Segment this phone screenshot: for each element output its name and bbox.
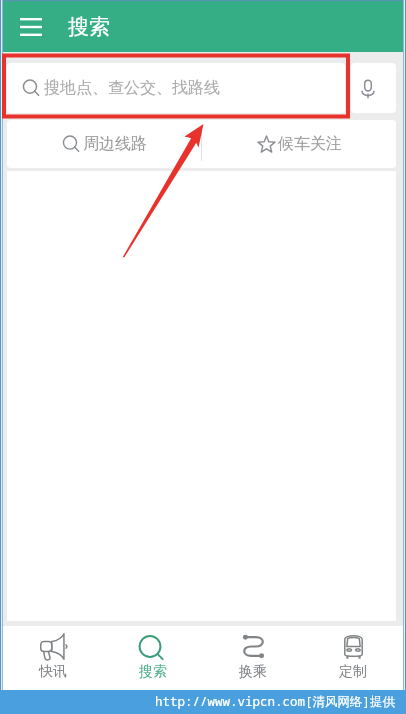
staticText: 快讯 — [39, 663, 67, 681]
button[interactable]: 快讯 — [3, 626, 103, 691]
staticText: 搜索 — [68, 14, 110, 40]
staticText: 候车关注 — [278, 134, 342, 154]
staticText: 周边线路 — [83, 134, 147, 154]
button[interactable]: 候车关注 — [202, 120, 396, 168]
staticText: 定制 — [339, 663, 367, 681]
staticText: http://www.vipcn.com[清风网络]提供 — [155, 693, 396, 710]
button[interactable]: 定制 — [303, 626, 403, 691]
button[interactable]: Voice search — [351, 63, 396, 113]
button[interactable]: 搜地点、查公交、找路线 — [7, 63, 345, 113]
staticText: 搜地点、查公交、找路线 — [44, 78, 220, 98]
button[interactable]: 周边线路 — [7, 120, 201, 168]
button[interactable]: 搜索 — [103, 626, 203, 691]
staticText: 换乘 — [239, 663, 267, 681]
staticText: 搜索 — [139, 663, 167, 681]
button[interactable]: Menu — [14, 12, 48, 42]
button[interactable]: 换乘 — [203, 626, 303, 691]
